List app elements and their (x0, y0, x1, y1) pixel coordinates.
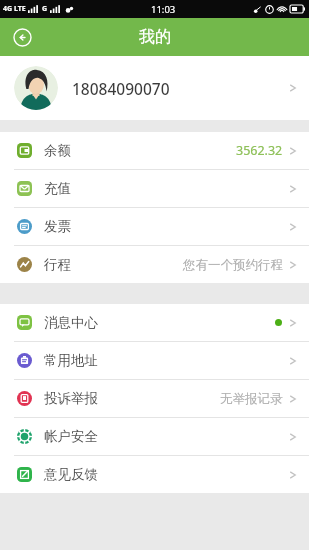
staticText: 常用地址 (44, 352, 98, 369)
staticText: 意见反馈 (44, 466, 98, 483)
button[interactable]: 行程 (0, 246, 309, 283)
staticText: 帐户安全 (44, 428, 98, 445)
staticText: 我的 (139, 27, 171, 47)
staticText: 4G LTE (3, 4, 26, 14)
button[interactable]: 常用地址 (0, 342, 309, 379)
button[interactable]: 18084090070 (0, 56, 309, 120)
button[interactable]: 帐户安全 (0, 418, 309, 455)
button[interactable]: 意见反馈 (0, 456, 309, 493)
staticText: 消息中心 (44, 314, 98, 331)
staticText: 行程 (44, 256, 71, 273)
button[interactable]: Back (8, 23, 36, 51)
staticText: 11:03 (151, 3, 176, 16)
staticText: 您有一个预约行程 (183, 257, 283, 273)
staticText: 18084090070 (72, 78, 170, 99)
staticText: 余额 (44, 142, 71, 159)
button[interactable]: 充值 (0, 170, 309, 207)
button[interactable]: 投诉举报 (0, 380, 309, 417)
staticText: 充值 (44, 180, 71, 197)
button[interactable]: 消息中心 (0, 304, 309, 341)
staticText: 发票 (44, 218, 71, 235)
staticText: 无举报记录 (220, 391, 283, 407)
staticText: 投诉举报 (44, 390, 98, 407)
button[interactable]: 余额 (0, 132, 309, 169)
staticText: G (42, 4, 48, 14)
staticText: 3562.32 (236, 142, 283, 159)
button[interactable]: 发票 (0, 208, 309, 245)
